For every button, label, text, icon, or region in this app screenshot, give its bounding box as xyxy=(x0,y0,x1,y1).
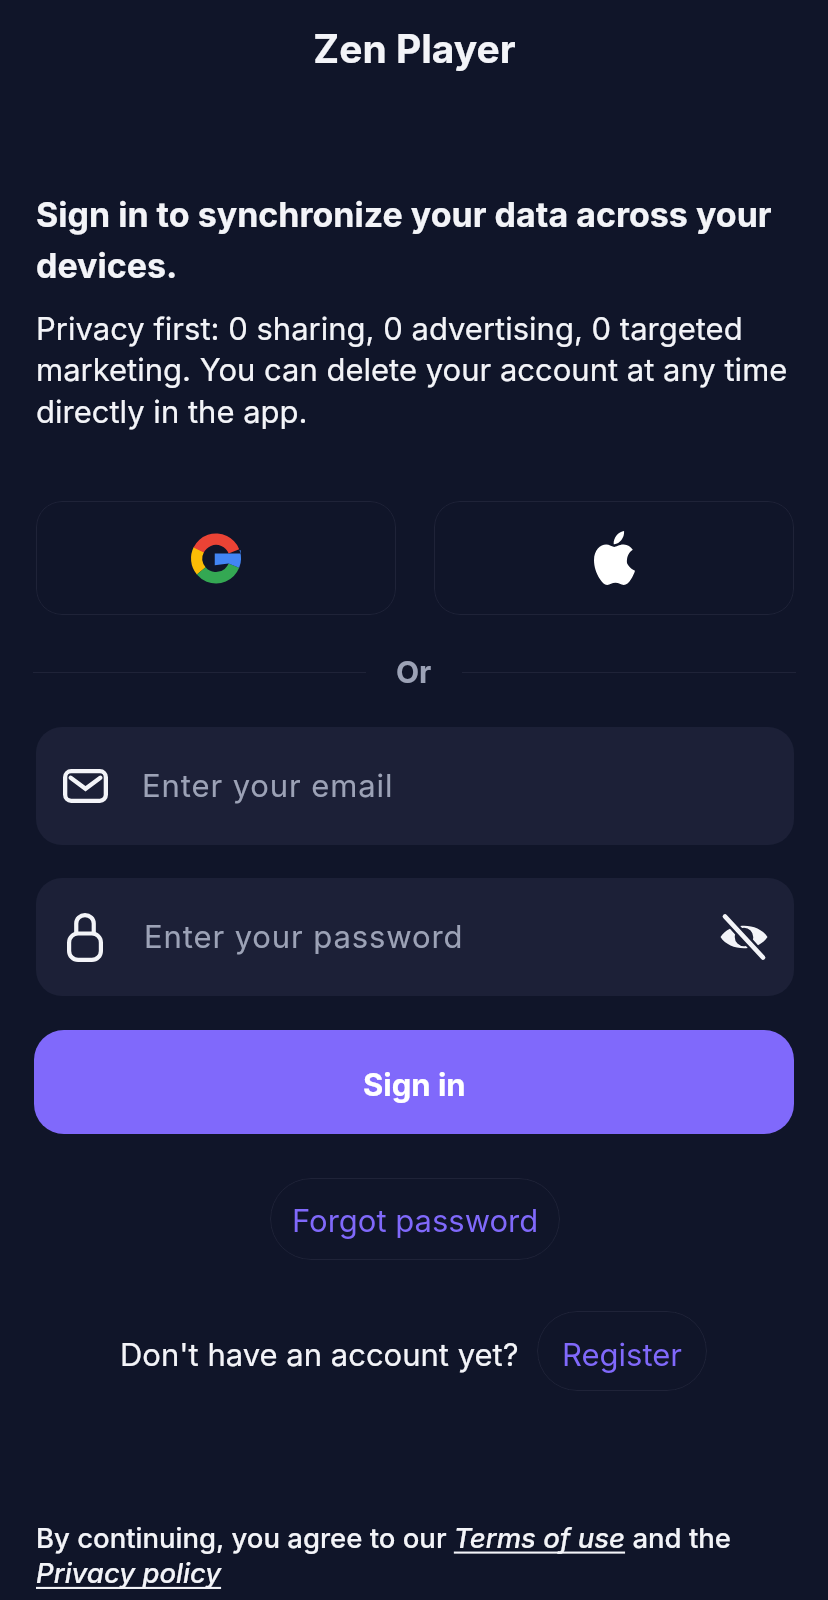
staticText: By continuing, you agree to our Terms of… xyxy=(36,1521,796,1590)
staticText: Register xyxy=(562,1336,683,1374)
staticText: Or xyxy=(396,654,432,690)
button[interactable]: Forgot password xyxy=(270,1178,560,1260)
staticText: Don't have an account yet? xyxy=(120,1336,519,1374)
staticText: Privacy first: 0 sharing, 0 advertising,… xyxy=(36,310,796,431)
button[interactable]: Sign in xyxy=(34,1030,794,1134)
button[interactable]: Enter your email xyxy=(36,727,794,845)
staticText: Zen Player xyxy=(313,25,516,72)
button[interactable]: By continuing, you agree to our Terms of… xyxy=(36,1521,796,1590)
button[interactable]: Sign in with Apple xyxy=(434,501,794,615)
button[interactable]: Show password xyxy=(718,911,770,963)
staticText: Enter your email xyxy=(142,767,394,805)
staticText: Sign in to synchronize your data across … xyxy=(36,194,792,286)
staticText: Enter your password xyxy=(144,918,718,956)
button[interactable]: Enter your password xyxy=(36,878,794,996)
staticText: Sign in xyxy=(363,1066,466,1104)
button[interactable]: Register xyxy=(537,1311,707,1391)
staticText: Forgot password xyxy=(292,1202,539,1240)
button[interactable]: Sign in with Google xyxy=(36,501,396,615)
